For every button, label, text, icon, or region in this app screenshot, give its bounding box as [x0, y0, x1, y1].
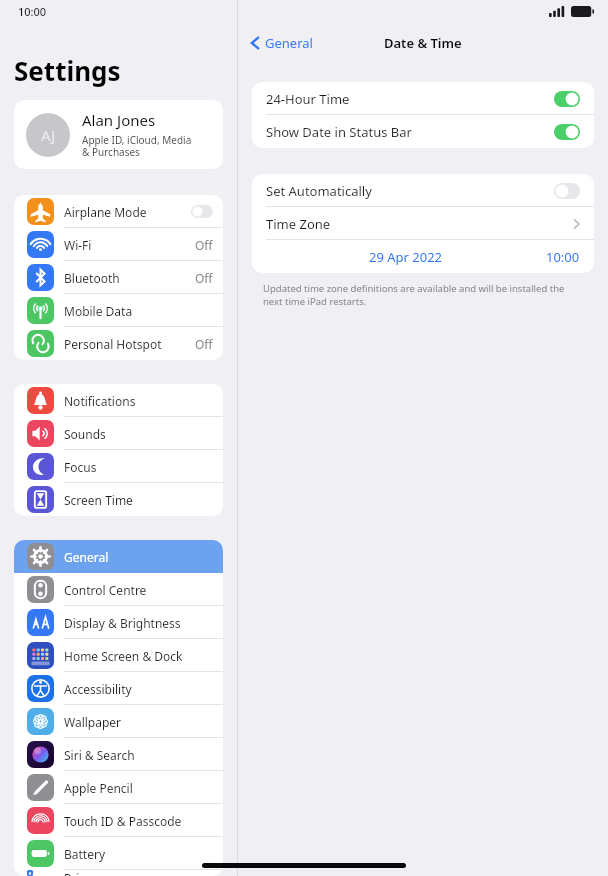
button[interactable]: Time Zone [252, 207, 594, 240]
staticText: 10:00 [546, 248, 580, 266]
staticText: 24-Hour Time [266, 90, 350, 108]
staticText: Privacy [64, 870, 105, 876]
button[interactable]: Mobile Data [14, 294, 223, 327]
button[interactable]: General [14, 540, 223, 573]
button[interactable]: Touch ID & Passcode [14, 804, 223, 837]
button[interactable]: Home Screen & Dock [14, 639, 223, 672]
staticText: Bluetooth [64, 270, 120, 286]
staticText: Apple Pencil [64, 780, 133, 796]
staticText: Settings [14, 53, 121, 88]
staticText: General [265, 34, 313, 52]
staticText: Display & Brightness [64, 615, 181, 631]
staticText: Notifications [64, 393, 136, 409]
staticText: Wi-Fi [64, 237, 92, 253]
button[interactable]: Show Date in Status Bar [252, 115, 594, 148]
staticText: Time Zone [266, 215, 331, 233]
button[interactable]: 24-Hour Time [252, 82, 594, 115]
staticText: Alan Jones [82, 110, 156, 130]
staticText: Apple ID, iCloud, Media & Purchases [82, 133, 192, 159]
button[interactable]: Battery [14, 837, 223, 870]
staticText: 29 Apr 2022 [369, 248, 443, 266]
staticText: Wallpaper [64, 714, 122, 730]
staticText: Off [195, 237, 213, 253]
button[interactable]: Airplane Mode [14, 195, 223, 228]
button[interactable]: Off [191, 205, 213, 218]
button[interactable]: AJ [14, 100, 223, 169]
button[interactable]: Siri & Search [14, 738, 223, 771]
staticText: Off [195, 336, 213, 352]
button[interactable]: Personal Hotspot [14, 327, 223, 360]
staticText: Siri & Search [64, 747, 135, 763]
staticText: Screen Time [64, 492, 133, 508]
button[interactable]: On [554, 91, 580, 107]
staticText: Updated time zone definitions are availa… [263, 282, 583, 308]
button[interactable]: Privacy [14, 870, 223, 876]
staticText: Home Screen & Dock [64, 648, 183, 664]
staticText: Off [195, 270, 213, 286]
staticText: AJ [41, 125, 56, 145]
staticText: Focus [64, 459, 97, 475]
button[interactable]: Accessibility [14, 672, 223, 705]
button[interactable]: Off [554, 183, 580, 199]
button[interactable]: 29 Apr 2022 [252, 240, 594, 273]
button[interactable]: On [554, 124, 580, 140]
button[interactable]: Bluetooth [14, 261, 223, 294]
button[interactable]: Sounds [14, 417, 223, 450]
staticText: Touch ID & Passcode [64, 813, 182, 829]
button[interactable]: Screen Time [14, 483, 223, 516]
staticText: Mobile Data [64, 303, 133, 319]
button[interactable]: Wi-Fi [14, 228, 223, 261]
button[interactable]: Notifications [14, 384, 223, 417]
staticText: Battery [64, 846, 106, 862]
button[interactable]: General [246, 30, 317, 56]
staticText: Personal Hotspot [64, 336, 162, 352]
button[interactable]: Display & Brightness [14, 606, 223, 639]
staticText: Set Automatically [266, 182, 372, 200]
button[interactable]: Focus [14, 450, 223, 483]
staticText: Airplane Mode [64, 204, 147, 220]
button[interactable]: Set Automatically [252, 174, 594, 207]
staticText: Show Date in Status Bar [266, 123, 412, 141]
staticText: 10:00 [18, 4, 47, 19]
button[interactable]: Control Centre [14, 573, 223, 606]
staticText: Date & Time [384, 34, 462, 52]
staticText: Accessibility [64, 681, 132, 697]
button[interactable]: Wallpaper [14, 705, 223, 738]
button[interactable]: Apple Pencil [14, 771, 223, 804]
staticText: Control Centre [64, 582, 147, 598]
staticText: Sounds [64, 426, 106, 442]
staticText: General [64, 549, 109, 565]
